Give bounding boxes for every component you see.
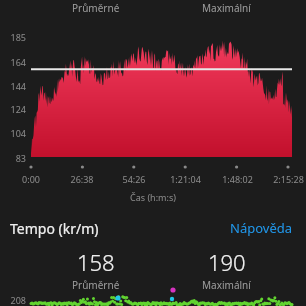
staticText: 164	[0, 56, 26, 68]
staticText: 1:21:04	[170, 173, 201, 185]
staticText: Průměrné	[72, 278, 120, 289]
staticText: Průměrné	[72, 1, 120, 15]
staticText: Nápověda	[230, 219, 292, 237]
staticText: Tempo (kr/m)	[10, 219, 99, 238]
button[interactable]: 158	[31, 247, 161, 289]
staticText: 185	[0, 31, 26, 43]
staticText: Čas (h:m:s)	[130, 191, 176, 203]
staticText: 104	[0, 127, 26, 139]
staticText: Maximální	[202, 1, 251, 15]
button[interactable]: 190	[161, 247, 292, 289]
button[interactable]: Nápověda	[226, 215, 296, 241]
staticText: 124	[0, 103, 26, 115]
staticText: 0:00	[22, 173, 40, 185]
staticText: 208	[0, 294, 26, 306]
staticText: 158	[77, 247, 115, 277]
staticText: Maximální	[202, 278, 251, 289]
staticText: 54:26	[122, 173, 146, 185]
staticText: 144	[0, 80, 26, 92]
staticText: 2:15:28	[273, 173, 304, 185]
staticText: 26:38	[70, 173, 94, 185]
staticText: 190	[208, 247, 246, 277]
staticText: 83	[0, 152, 26, 164]
staticText: 1:48:02	[222, 173, 253, 185]
